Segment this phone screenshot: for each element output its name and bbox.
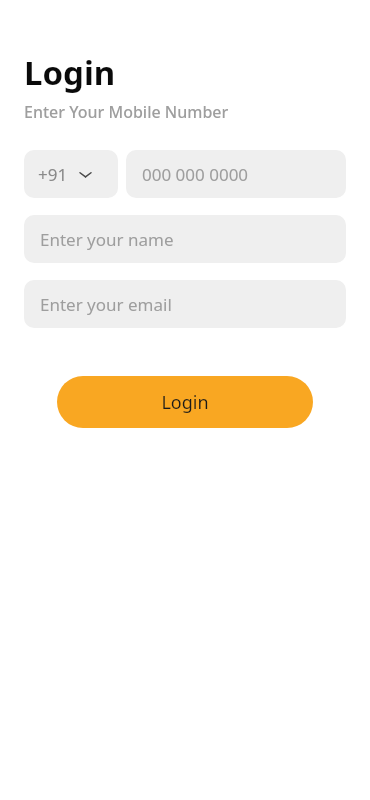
staticText: 000 000 0000	[142, 163, 249, 186]
button[interactable]: 000 000 0000	[126, 150, 346, 198]
staticText: Enter your name	[40, 228, 174, 251]
button[interactable]: Select country code	[24, 150, 118, 198]
staticText: Login	[24, 50, 116, 95]
button[interactable]: Login	[57, 376, 313, 428]
button[interactable]: Enter your email	[24, 280, 346, 328]
staticText: Enter Your Mobile Number	[24, 101, 229, 123]
button[interactable]: Enter your name	[24, 215, 346, 263]
staticText: Enter your email	[40, 293, 172, 316]
staticText: Login	[161, 390, 209, 415]
staticText: +91	[38, 163, 68, 186]
